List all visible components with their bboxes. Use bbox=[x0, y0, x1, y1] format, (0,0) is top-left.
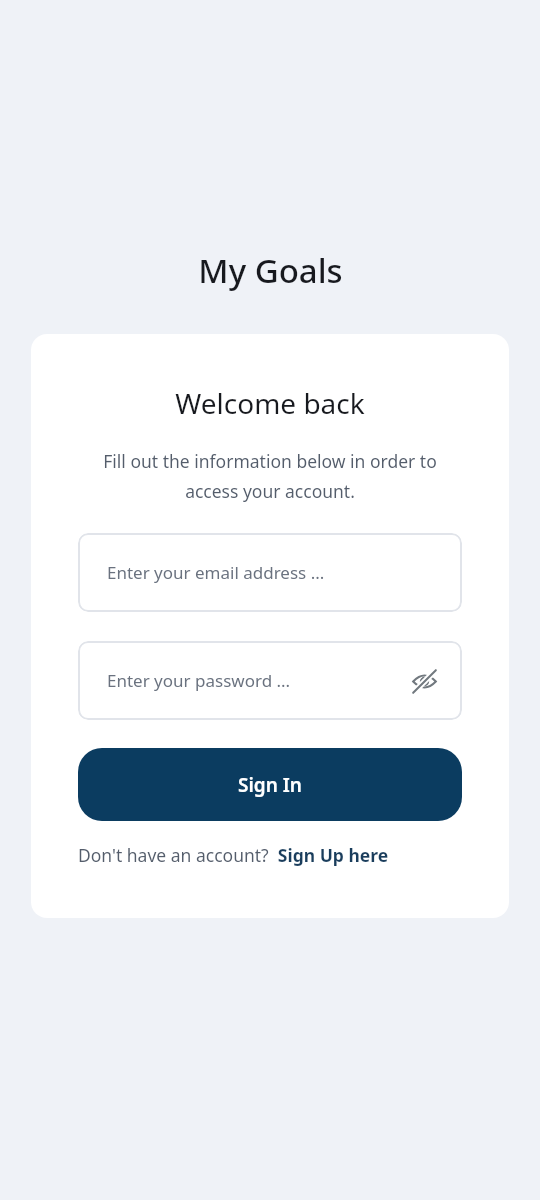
button[interactable]: Enter your password ... bbox=[78, 641, 462, 720]
staticText: Fill out the information below in order … bbox=[78, 449, 462, 503]
button[interactable]: Show password bbox=[404, 661, 444, 701]
staticText: Enter your email address ... bbox=[107, 561, 325, 584]
staticText: Don't have an account? Sign Up here bbox=[78, 843, 462, 867]
staticText: Welcome back bbox=[175, 384, 365, 422]
button[interactable]: Don't have an account? Sign Up here bbox=[78, 843, 462, 867]
staticText: Sign In bbox=[238, 772, 302, 798]
button[interactable]: Sign In bbox=[78, 748, 462, 821]
staticText: Enter your password ... bbox=[107, 669, 404, 692]
staticText: My Goals bbox=[198, 248, 343, 293]
button[interactable]: Enter your email address ... bbox=[78, 533, 462, 612]
